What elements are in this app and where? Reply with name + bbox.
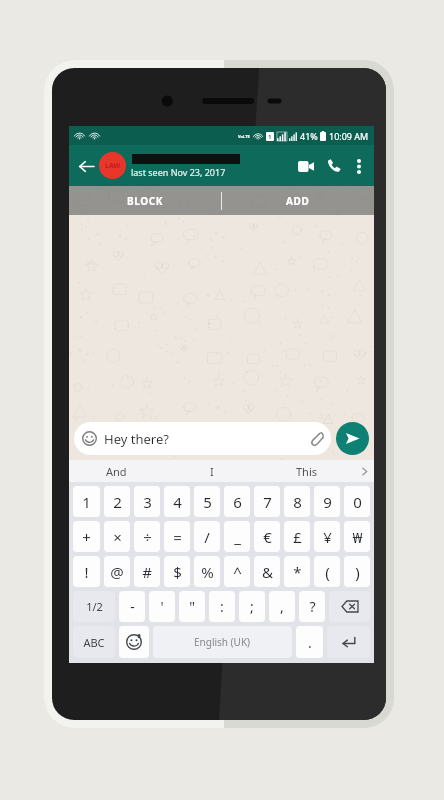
button[interactable]: 0 [344,486,370,517]
button[interactable]: / [194,521,220,552]
button[interactable]: ' [149,591,175,622]
staticText: 8 [293,492,302,512]
button[interactable]: 9 [314,486,340,517]
staticText: ABC [83,635,105,650]
button[interactable]: ÷ [134,521,160,552]
staticText: 7 [263,492,272,512]
staticText: € [263,527,272,547]
staticText: = [173,527,182,547]
button[interactable]: $ [164,556,190,587]
button[interactable]: Contact photo [99,152,126,179]
button[interactable]: - [119,591,145,622]
button[interactable]: last seen Nov 23, 2017 [131,154,292,178]
staticText: / [204,527,210,547]
staticText: 1 [268,133,272,141]
staticText: £ [293,527,302,547]
staticText: 1 [82,492,91,512]
staticText: 9 [323,492,332,512]
staticText: @ [110,562,124,582]
button[interactable]: * [284,556,310,587]
staticText: VoLTE [238,134,250,139]
button[interactable]: × [104,521,130,552]
button[interactable]: BLOCK [69,186,221,215]
button[interactable]: " [179,591,205,622]
button[interactable]: 8 [284,486,310,517]
button[interactable]: Video call [292,152,320,180]
button[interactable]: Enter [327,626,370,658]
button[interactable]: 2 [104,486,130,517]
button[interactable]: . [296,626,323,658]
staticText: - [130,597,135,616]
button[interactable]: ^ [224,556,250,587]
staticText: ₩ [352,527,363,547]
button[interactable]: Emoji and voice input [119,626,149,658]
button[interactable]: = [164,521,190,552]
staticText: And [106,464,127,479]
staticText: last seen Nov 23, 2017 [131,166,226,178]
button[interactable]: £ [284,521,310,552]
button[interactable]: Hey there? [74,422,331,455]
button[interactable]: 4 [164,486,190,517]
staticText: I [210,464,214,479]
button[interactable]: I [164,460,259,482]
button[interactable]: Backspace [329,591,370,622]
staticText: ' [160,597,164,616]
button[interactable]: 3 [134,486,160,517]
button[interactable]: More suggestions [354,460,374,482]
button[interactable]: ( [314,556,340,587]
staticText: 3 [143,492,152,512]
staticText: % [201,562,214,582]
button[interactable]: ABC [73,626,115,658]
staticText: 0 [353,492,362,512]
staticText: ? [309,597,316,616]
staticText: English (UK) [194,635,251,649]
button[interactable]: ) [344,556,370,587]
staticText: : [220,597,224,616]
staticText: . [308,633,312,652]
button[interactable]: 7 [254,486,280,517]
button[interactable]: € [254,521,280,552]
button[interactable]: ADD [222,186,374,215]
button[interactable]: Voice call [320,152,348,180]
button[interactable]: More options [348,155,370,177]
staticText: ¥ [323,527,332,547]
staticText: + [82,527,91,547]
staticText: ; [250,597,254,616]
staticText: 1/2 [86,599,103,614]
button[interactable]: , [269,591,295,622]
staticText: " [189,597,195,616]
button[interactable]: _ [224,521,250,552]
button[interactable]: 6 [224,486,250,517]
button[interactable]: @ [104,556,130,587]
staticText: Hey there? [104,430,308,448]
staticText: 10:09 AM [329,130,369,142]
button[interactable]: ! [73,556,100,587]
button[interactable]: And [69,460,164,482]
button[interactable]: ; [239,591,265,622]
staticText: BLOCK [127,194,164,208]
button[interactable]: 1/2 [73,591,115,622]
staticText: ÷ [143,527,152,547]
button[interactable]: ₩ [344,521,370,552]
staticText: 41% [300,130,318,142]
button[interactable]: This [259,460,354,482]
button[interactable]: & [254,556,280,587]
staticText: 4 [173,492,182,512]
staticText: ADD [286,194,310,208]
button[interactable]: Send [336,422,369,455]
button[interactable]: ? [299,591,325,622]
staticText: This [296,464,318,479]
button[interactable]: % [194,556,220,587]
button[interactable]: + [73,521,100,552]
button[interactable]: 1 [73,486,100,517]
staticText: LAW [105,161,121,171]
staticText: ! [84,562,89,582]
staticText: & [262,562,273,582]
button[interactable]: 5 [194,486,220,517]
button[interactable]: English (UK) [153,626,292,658]
button[interactable]: ¥ [314,521,340,552]
button[interactable]: # [134,556,160,587]
staticText: $ [173,562,182,582]
button[interactable]: Back [73,153,99,179]
button[interactable]: : [209,591,235,622]
